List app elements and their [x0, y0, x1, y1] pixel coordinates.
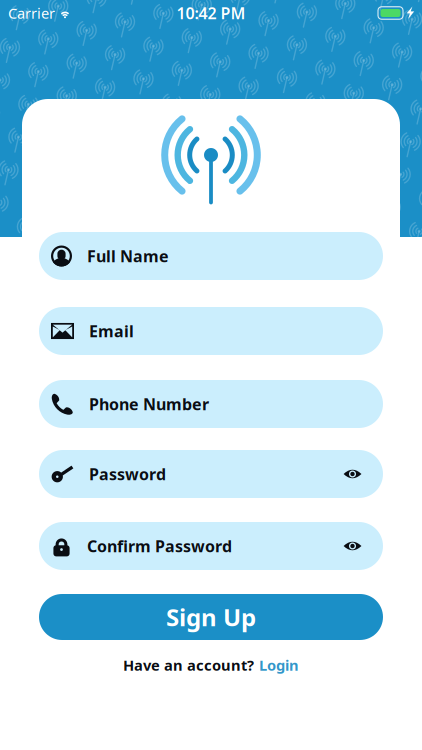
button[interactable]: Password — [39, 450, 383, 498]
button[interactable]: Confirm Password — [39, 522, 383, 570]
button[interactable]: Login — [259, 655, 299, 675]
button[interactable]: Email — [39, 307, 383, 355]
staticText: Sign Up — [166, 601, 256, 633]
staticText: 10:42 PM — [176, 2, 245, 24]
staticText: Phone Number — [89, 393, 209, 415]
button[interactable]: Sign Up — [39, 594, 383, 640]
staticText: Full Name — [87, 245, 169, 267]
button[interactable]: Full Name — [39, 232, 383, 280]
staticText: Carrier — [8, 3, 55, 23]
staticText: Password — [89, 463, 166, 485]
staticText: Login — [259, 655, 299, 675]
button[interactable]: Phone Number — [39, 380, 383, 428]
staticText: Email — [89, 320, 134, 342]
staticText: Have an account? — [123, 655, 254, 675]
staticText: Confirm Password — [87, 535, 232, 557]
